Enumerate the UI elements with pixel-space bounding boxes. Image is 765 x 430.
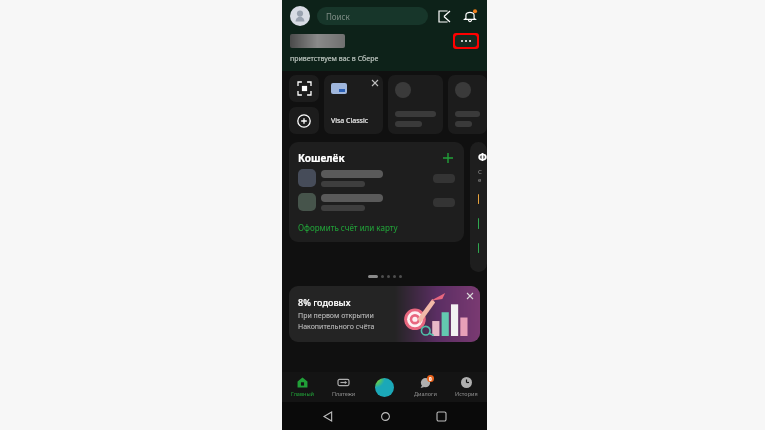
- button[interactable]: Scan: [289, 75, 319, 102]
- button[interactable]: Close banner: [465, 291, 475, 301]
- staticText: Кошелёк: [298, 151, 345, 165]
- button[interactable]: 8% годовых: [289, 286, 480, 342]
- button[interactable]: Home: [374, 405, 396, 427]
- button[interactable]: История: [446, 372, 487, 402]
- button[interactable]: Scan QR: [435, 7, 453, 25]
- button[interactable]: Loading card: [388, 75, 443, 134]
- staticText: Платежи: [332, 390, 356, 397]
- button[interactable]: Поиск: [317, 7, 428, 25]
- button[interactable]: Close: [371, 79, 379, 87]
- staticText: приветствуем вас в Сбере: [290, 54, 379, 64]
- button[interactable]: Recents: [430, 405, 452, 427]
- staticText: Се: [478, 168, 479, 184]
- staticText: 8% годовых: [298, 296, 351, 308]
- button[interactable]: Back: [317, 405, 339, 427]
- button[interactable]: Add: [289, 107, 319, 134]
- button[interactable]: Profile: [290, 6, 310, 26]
- staticText: Ф: [478, 150, 479, 164]
- button[interactable]: Add account: [441, 151, 455, 165]
- staticText: Visa Classic: [331, 116, 369, 126]
- staticText: 0: [429, 376, 432, 382]
- staticText: Главный: [291, 390, 314, 397]
- staticText: Поиск: [326, 11, 350, 22]
- button[interactable]: Ф: [470, 142, 487, 272]
- staticText: Оформить счёт или карту: [298, 222, 398, 233]
- button[interactable]: Кошелёк: [289, 142, 464, 242]
- staticText: Накопительного счёта: [298, 322, 375, 332]
- button[interactable]: 0: [405, 372, 446, 402]
- staticText: Диалоги: [414, 390, 437, 397]
- button[interactable]: Платежи: [323, 372, 364, 402]
- staticText: История: [455, 390, 478, 397]
- button[interactable]: Assistant: [375, 378, 394, 397]
- staticText: При первом открытии: [298, 311, 374, 321]
- button[interactable]: Close: [324, 75, 383, 134]
- button[interactable]: Главный: [282, 372, 323, 402]
- button[interactable]: Loading card: [448, 75, 487, 134]
- button[interactable]: More options: [455, 35, 477, 47]
- button[interactable]: Notifications: [461, 7, 479, 25]
